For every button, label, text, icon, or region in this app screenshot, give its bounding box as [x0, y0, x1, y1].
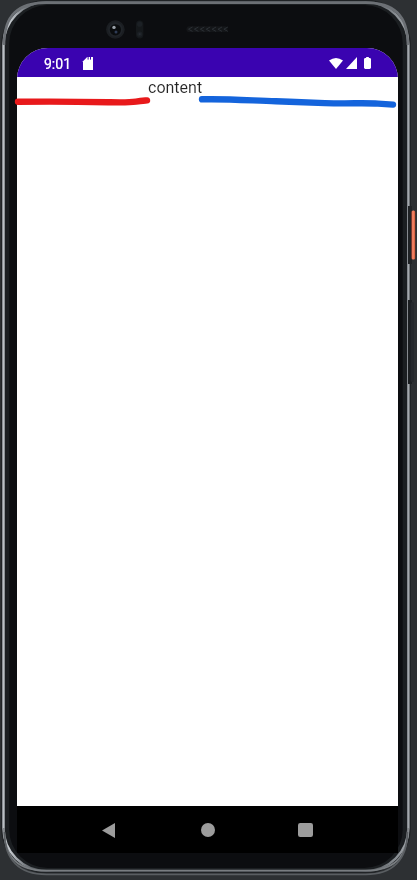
button[interactable]: Home: [168, 808, 248, 852]
button[interactable]: Back: [68, 808, 148, 852]
staticText: content: [148, 78, 203, 97]
staticText: 9:01: [44, 56, 71, 72]
button[interactable]: Recent apps: [265, 808, 345, 852]
